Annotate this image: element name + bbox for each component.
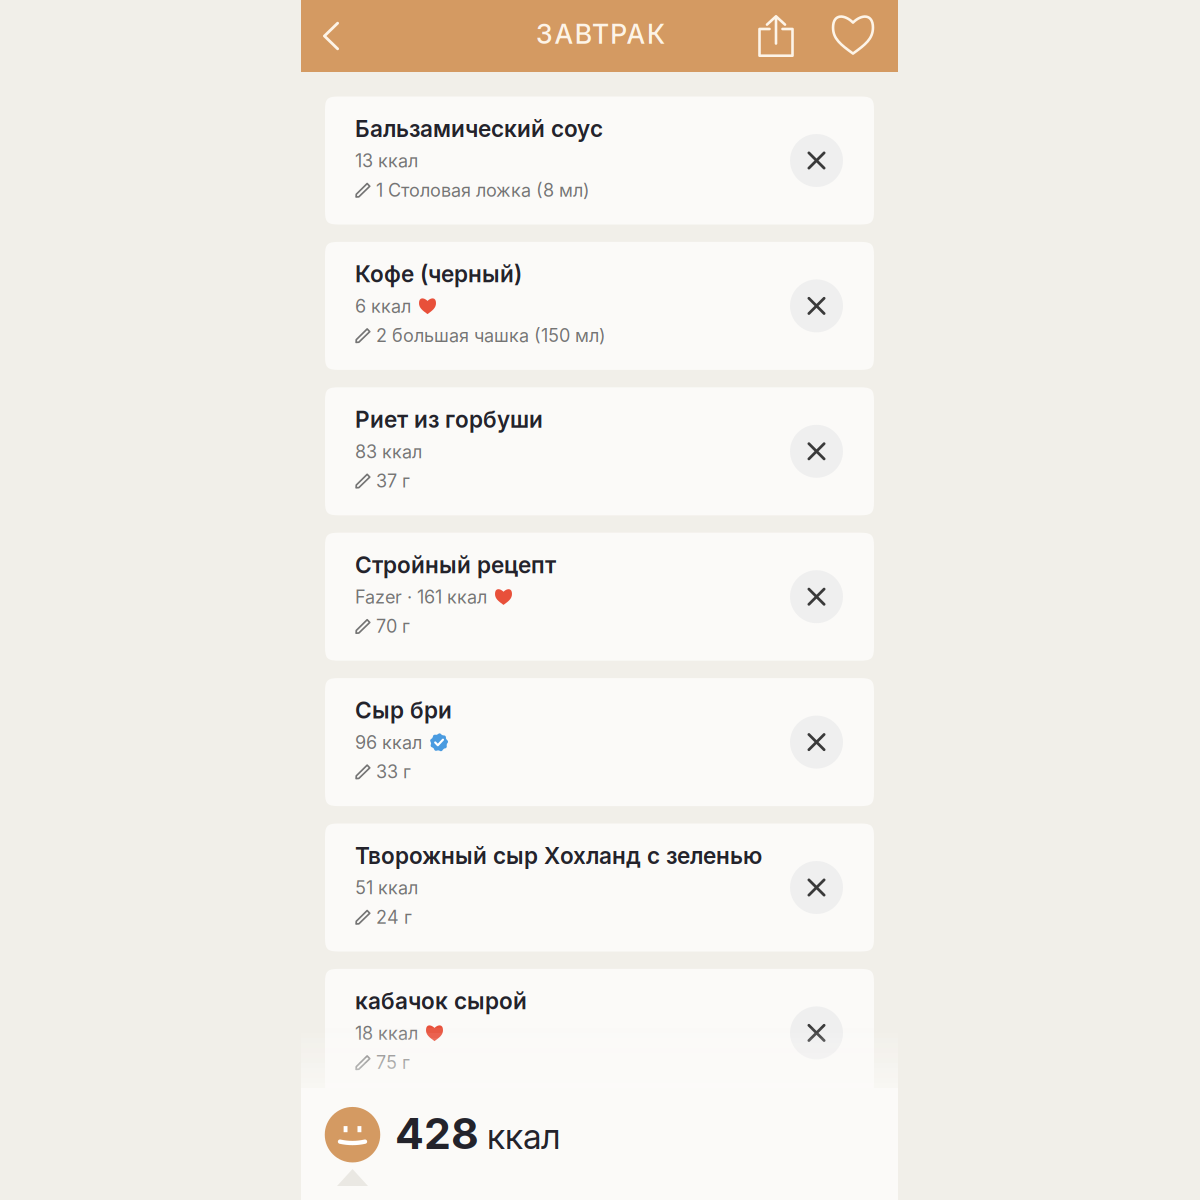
- staticText: 428: [395, 1108, 479, 1159]
- button[interactable]: 428: [301, 1088, 898, 1200]
- staticText: 96 ккал: [355, 731, 422, 753]
- staticText: Риет из горбуши: [355, 406, 543, 433]
- staticText: 24 г: [376, 906, 412, 928]
- button[interactable]: Риет из горбуши: [325, 387, 874, 515]
- staticText: кабачок сырой: [355, 987, 527, 1015]
- staticText: 2 большая чашка (150 мл): [376, 325, 606, 346]
- button[interactable]: Back: [303, 0, 359, 72]
- staticText: Стройный рецепт: [355, 551, 556, 579]
- staticText: 51 ккал: [355, 877, 418, 899]
- button[interactable]: Сыр бри: [325, 678, 874, 806]
- button[interactable]: Творожный сыр Хохланд с зеленью: [325, 823, 874, 951]
- staticText: ккал: [487, 1115, 560, 1157]
- staticText: 75 г: [376, 1052, 410, 1073]
- staticText: ЗАВТРАК: [536, 18, 665, 50]
- staticText: Творожный сыр Хохланд с зеленью: [355, 842, 762, 869]
- button[interactable]: кабачок сырой: [325, 969, 874, 1097]
- button[interactable]: Favorite: [825, 0, 881, 71]
- staticText: 18 ккал: [355, 1022, 418, 1044]
- staticText: 70 г: [376, 615, 410, 637]
- staticText: 37 г: [376, 470, 410, 492]
- staticText: Бальзамический соус: [355, 115, 603, 142]
- staticText: Fazer · 161 ккал: [355, 586, 487, 608]
- button[interactable]: Share: [748, 0, 804, 72]
- button[interactable]: Бальзамический соус: [325, 96, 874, 224]
- staticText: 83 ккал: [355, 441, 422, 462]
- staticText: 1 Столовая ложка (8 мл): [376, 179, 590, 201]
- staticText: Кофе (черный): [355, 260, 522, 288]
- staticText: 33 г: [376, 761, 411, 783]
- staticText: 6 ккал: [355, 295, 411, 317]
- staticText: Сыр бри: [355, 697, 452, 724]
- staticText: 13 ккал: [355, 150, 418, 172]
- button[interactable]: Стройный рецепт: [325, 533, 874, 661]
- button[interactable]: Кофе (черный): [325, 242, 874, 370]
